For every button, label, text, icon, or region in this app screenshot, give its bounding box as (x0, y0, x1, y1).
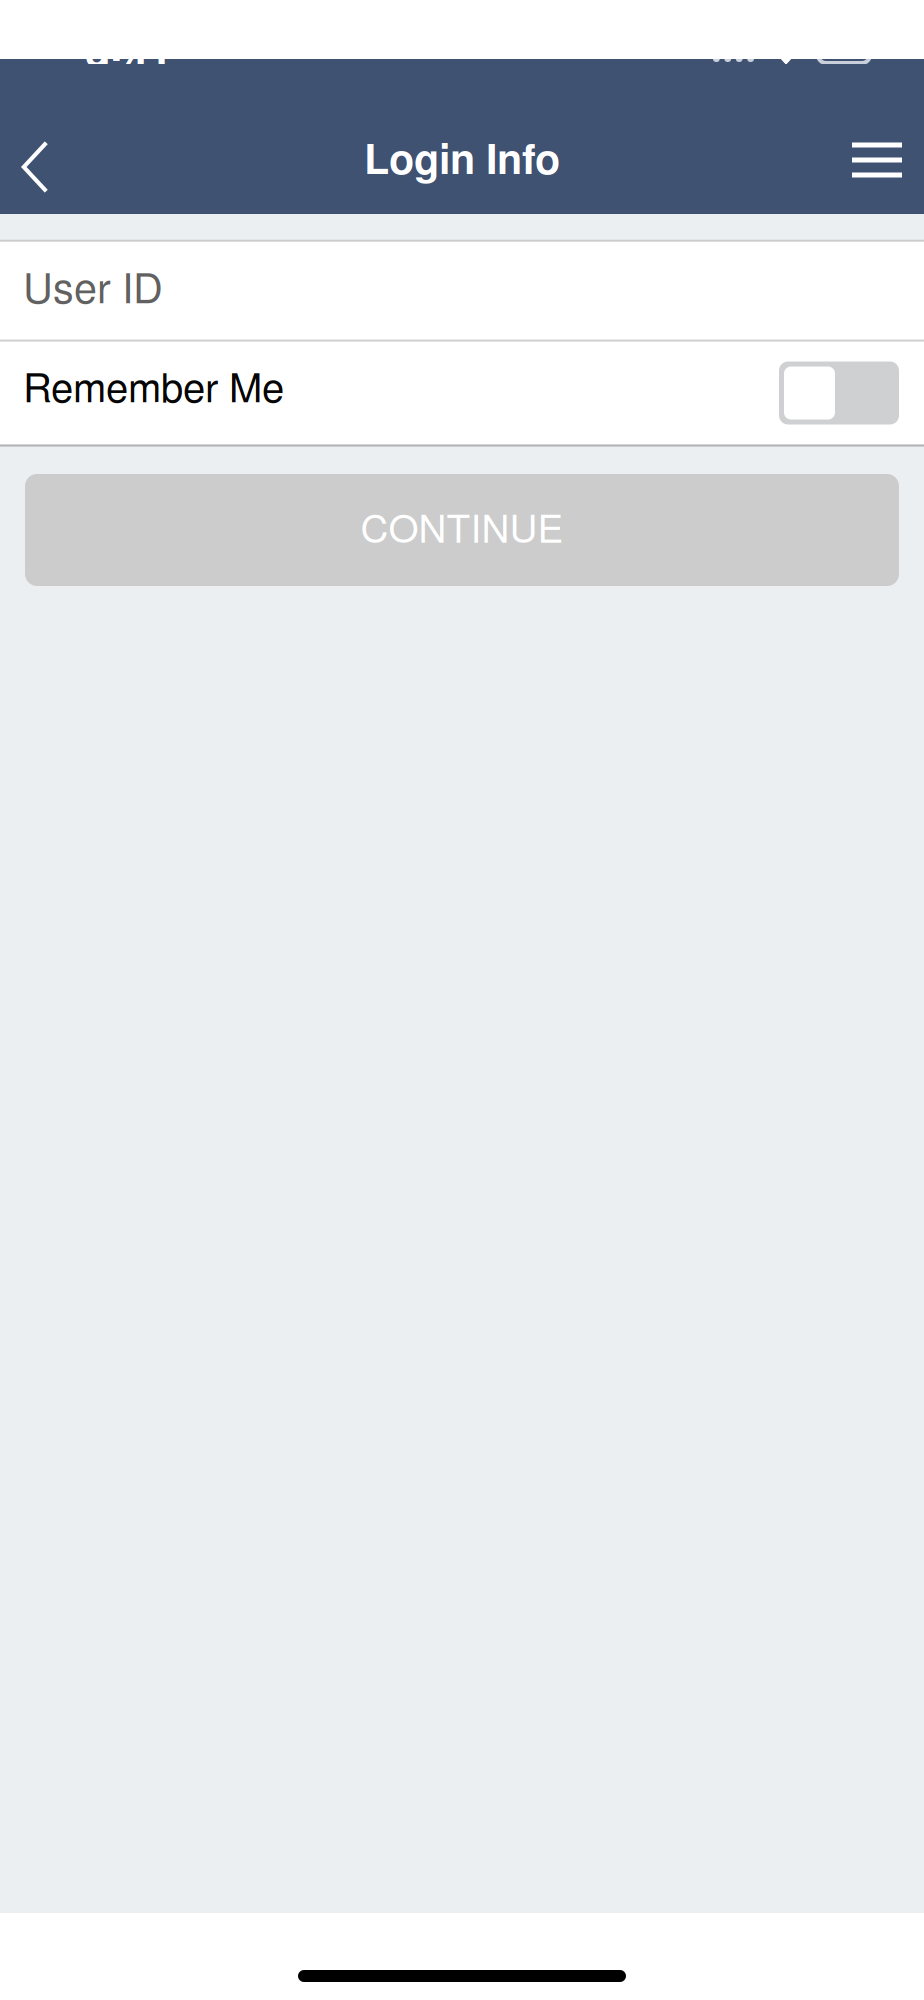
button[interactable]: Back (0, 64, 66, 214)
staticText: 9:41 (85, 28, 172, 91)
button[interactable]: Menu (828, 64, 924, 214)
button[interactable]: CONTINUE (25, 474, 899, 586)
staticText: Remember Me (23, 356, 284, 414)
staticText: CONTINUE (360, 498, 563, 554)
button[interactable]: Remember Me (0, 342, 924, 444)
staticText: User ID (23, 256, 163, 315)
button[interactable]: User ID (0, 242, 924, 339)
staticText: Login Info (364, 127, 560, 187)
